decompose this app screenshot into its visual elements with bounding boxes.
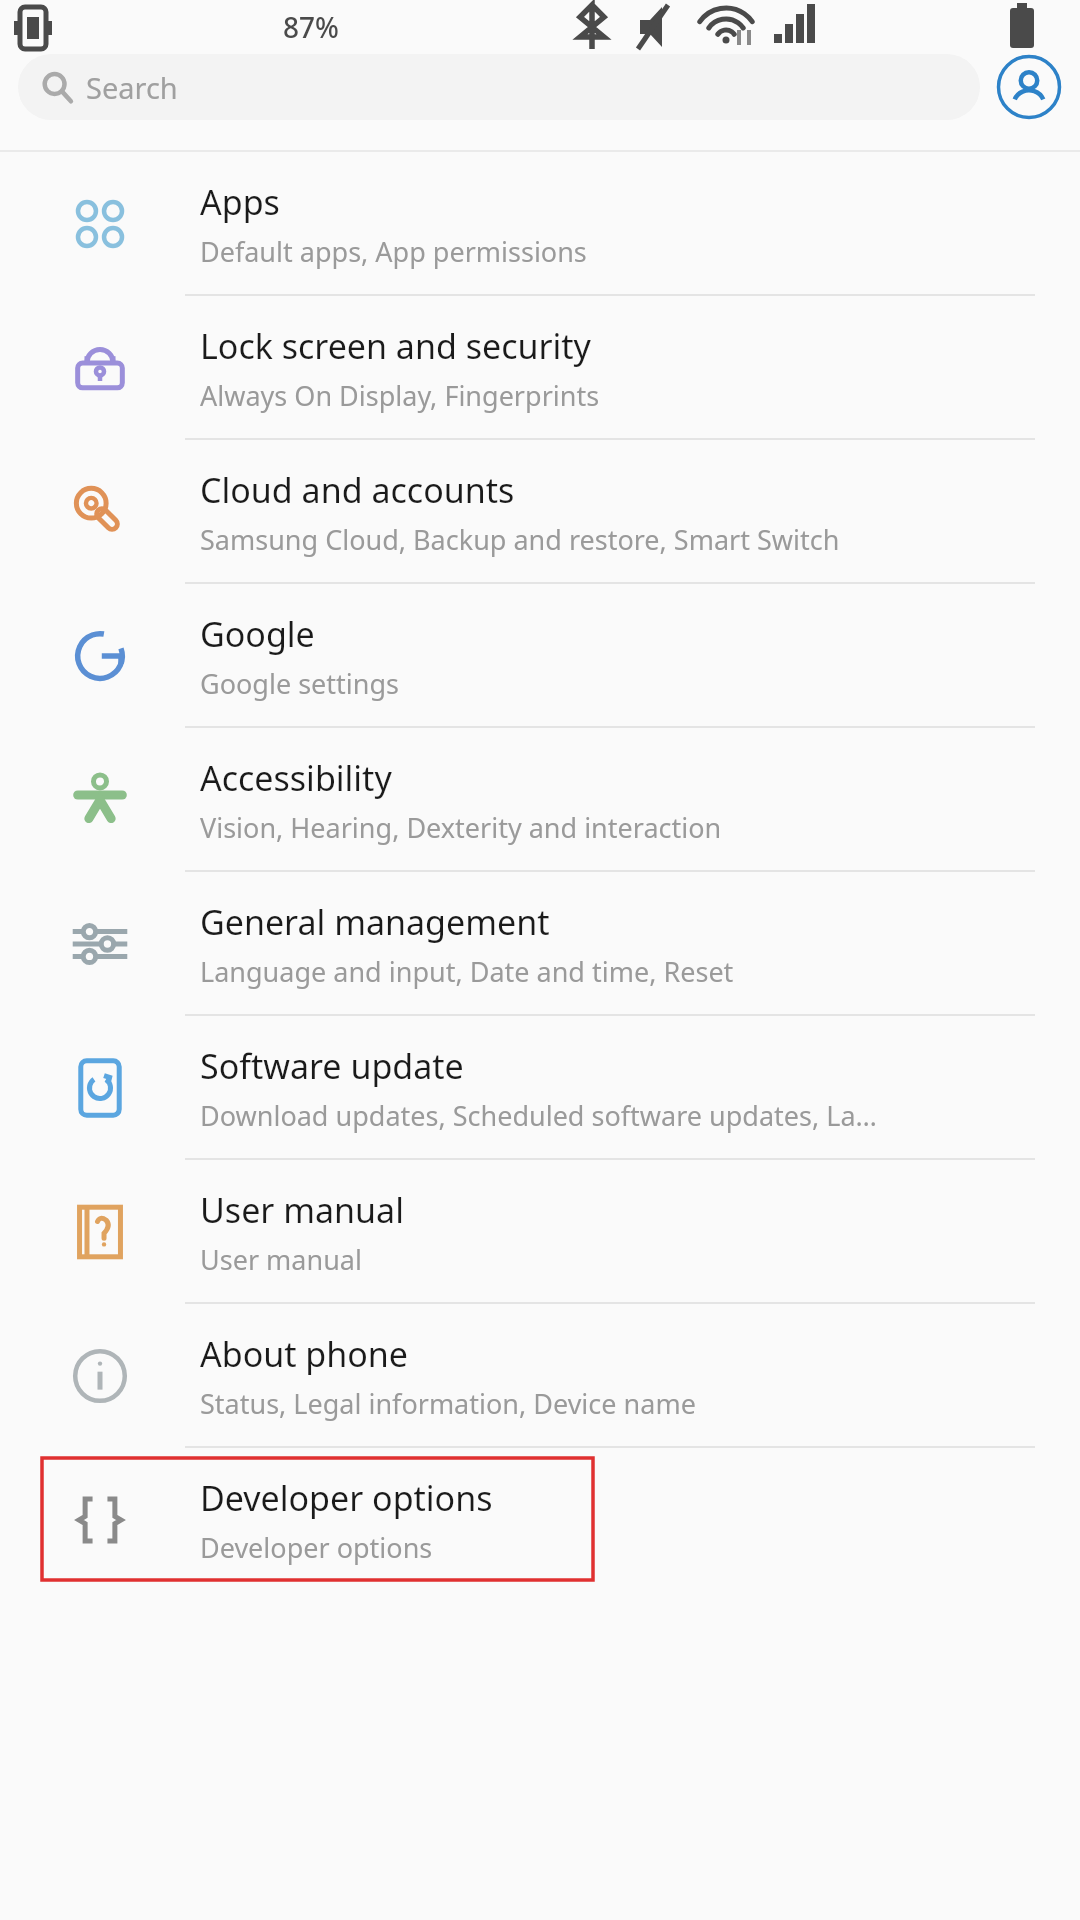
staticText: Cloud and accounts: [200, 467, 515, 513]
staticText: Search: [86, 68, 178, 107]
staticText: Apps: [200, 179, 280, 225]
button[interactable]: Search: [18, 54, 980, 120]
staticText: Always On Display, Fingerprints: [200, 377, 600, 414]
button[interactable]: Developer options: [0, 1448, 1080, 1592]
staticText: Developer options: [200, 1475, 493, 1521]
staticText: Samsung Cloud, Backup and restore, Smart…: [200, 521, 840, 558]
staticText: Software update: [200, 1043, 464, 1089]
button[interactable]: Account: [996, 54, 1062, 120]
staticText: Google settings: [200, 665, 399, 702]
button[interactable]: Google: [0, 584, 1080, 728]
staticText: User manual: [200, 1187, 404, 1233]
button[interactable]: Accessibility: [0, 728, 1080, 872]
button[interactable]: User manual: [0, 1160, 1080, 1304]
button[interactable]: Apps: [0, 152, 1080, 296]
button[interactable]: Cloud and accounts: [0, 440, 1080, 584]
staticText: 87%: [283, 8, 339, 46]
staticText: Developer options: [200, 1529, 433, 1566]
button[interactable]: Lock screen and security: [0, 296, 1080, 440]
staticText: Accessibility: [200, 755, 392, 801]
staticText: Language and input, Date and time, Reset: [200, 953, 734, 990]
staticText: About phone: [200, 1331, 409, 1377]
button[interactable]: General management: [0, 872, 1080, 1016]
staticText: Vision, Hearing, Dexterity and interacti…: [200, 809, 722, 846]
staticText: Download updates, Scheduled software upd…: [200, 1097, 877, 1134]
staticText: General management: [200, 899, 550, 945]
staticText: User manual: [200, 1241, 362, 1278]
staticText: Lock screen and security: [200, 323, 591, 369]
button[interactable]: About phone: [0, 1304, 1080, 1448]
button[interactable]: Software update: [0, 1016, 1080, 1160]
staticText: Default apps, App permissions: [200, 233, 587, 270]
staticText: Status, Legal information, Device name: [200, 1385, 696, 1422]
staticText: Google: [200, 611, 315, 657]
